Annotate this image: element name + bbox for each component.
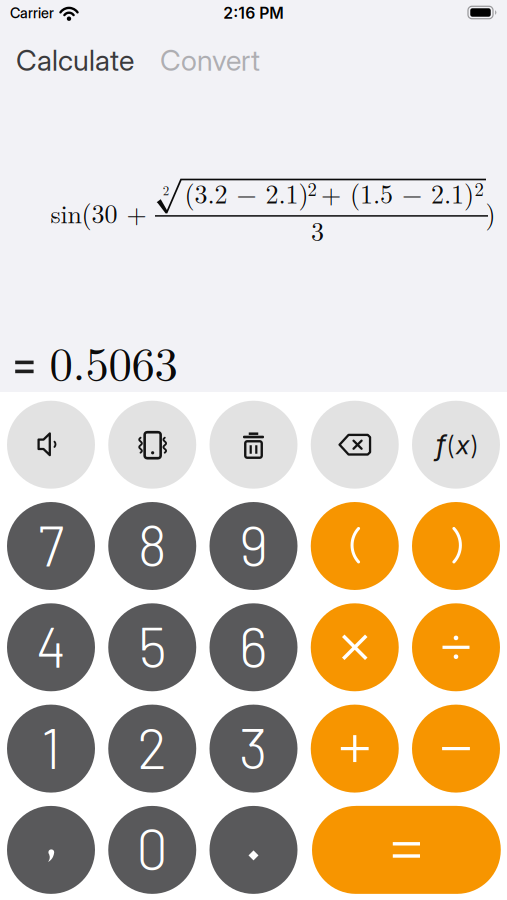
staticText: 2	[137, 713, 167, 780]
button[interactable]: Divide	[412, 603, 500, 691]
staticText: 6	[239, 612, 268, 679]
button[interactable]: Open parenthesis	[311, 502, 399, 590]
staticText: f	[436, 427, 446, 462]
staticText: 9	[239, 510, 268, 578]
button[interactable]: Close parenthesis	[412, 502, 500, 590]
button[interactable]: Sound	[7, 401, 95, 489]
staticText: 0	[136, 814, 168, 881]
staticText: Convert	[160, 43, 260, 78]
button[interactable]: 4	[7, 603, 95, 691]
staticText: )	[485, 194, 495, 231]
button[interactable]: Calculate	[16, 43, 134, 78]
staticText: Carrier	[10, 4, 54, 22]
staticText: 2:16 PM	[223, 3, 284, 22]
staticText: 0.5063	[50, 328, 178, 394]
button[interactable]: Multiply	[311, 603, 399, 691]
staticText: 7	[38, 510, 64, 578]
staticText: 5	[138, 612, 166, 679]
staticText: sin(30 +	[50, 194, 146, 231]
button[interactable]: Clear all	[209, 401, 297, 489]
staticText: 3	[311, 212, 324, 248]
button[interactable]: Equals	[312, 806, 501, 894]
staticText: (3.2 − 2.1)	[184, 174, 308, 211]
button[interactable]: Add	[311, 705, 399, 793]
button[interactable]: 6	[209, 603, 297, 691]
staticText: 2	[307, 175, 316, 201]
button[interactable]: 1	[7, 705, 95, 793]
staticText: 2	[474, 175, 483, 201]
button[interactable]: Vibrate	[108, 401, 196, 489]
staticText: x	[456, 429, 470, 460]
staticText: 3	[239, 713, 268, 780]
button[interactable]: Decimal point	[209, 806, 297, 894]
staticText: 4	[36, 612, 66, 679]
staticText: (	[446, 429, 455, 460]
button[interactable]: Subtract	[412, 705, 500, 793]
staticText: 1	[41, 713, 61, 780]
button[interactable]: Comma	[7, 806, 95, 894]
button[interactable]: 8	[108, 502, 196, 590]
staticText: 8	[138, 510, 167, 578]
button[interactable]: 5	[108, 603, 196, 691]
staticText: 2	[163, 181, 169, 199]
button[interactable]: 2	[108, 705, 196, 793]
staticText: )	[470, 429, 479, 460]
button[interactable]: Functions	[412, 401, 500, 489]
button[interactable]: Delete	[311, 401, 399, 489]
button[interactable]: 9	[209, 502, 297, 590]
staticText: Calculate	[16, 43, 134, 78]
button[interactable]: 0	[108, 806, 196, 894]
staticText: + (1.5 − 2.1)	[321, 174, 474, 211]
button[interactable]: 7	[7, 502, 95, 590]
button[interactable]: 3	[209, 705, 297, 793]
button[interactable]: Convert	[160, 43, 260, 78]
